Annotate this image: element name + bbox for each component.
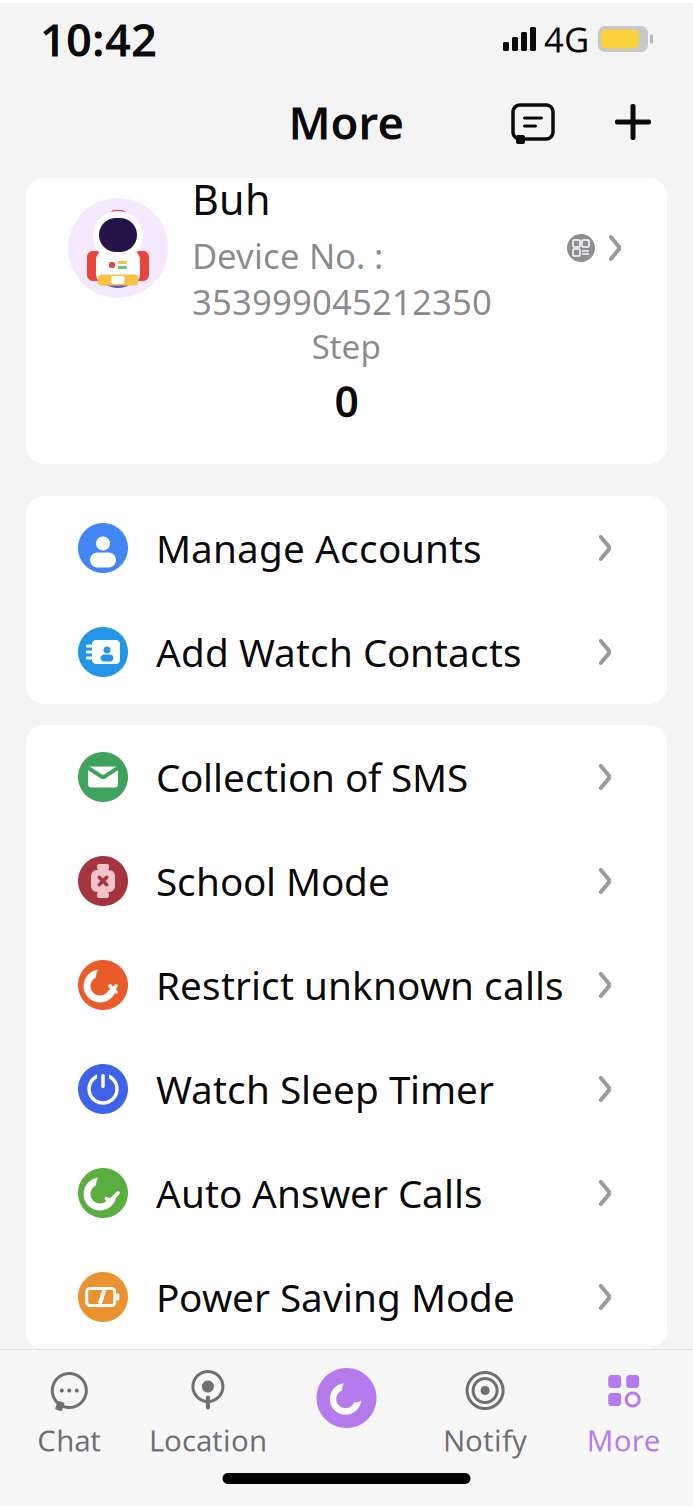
button[interactable]: More <box>554 1365 693 1465</box>
staticText: Add Watch Contacts <box>156 626 522 678</box>
button[interactable]: Notify <box>416 1365 554 1465</box>
staticText: More <box>288 92 404 152</box>
staticText: Step <box>311 324 381 368</box>
staticText: Power Saving Mode <box>156 1271 515 1323</box>
staticText: Watch Sleep Timer <box>156 1063 494 1115</box>
staticText: Auto Answer Calls <box>156 1167 483 1219</box>
staticText: More <box>587 1420 661 1459</box>
button[interactable]: School Mode <box>26 829 667 933</box>
button[interactable]: Buh <box>26 178 667 318</box>
button[interactable]: Messages <box>501 90 565 154</box>
staticText: Manage Accounts <box>156 522 482 574</box>
button[interactable]: Collection of SMS <box>26 725 667 829</box>
button[interactable]: Chat <box>0 1365 139 1465</box>
staticText: Device No. :353999045212350 <box>192 232 492 324</box>
staticText: Chat <box>37 1420 101 1459</box>
button[interactable]: Manage Accounts <box>26 496 667 600</box>
button[interactable]: Power Saving Mode <box>26 1245 667 1349</box>
button[interactable]: Call <box>277 1362 416 1468</box>
button[interactable]: Location <box>139 1365 277 1465</box>
staticText: Restrict unknown calls <box>156 959 564 1011</box>
staticText: Collection of SMS <box>156 751 468 803</box>
button[interactable]: Add Watch Contacts <box>26 600 667 704</box>
staticText: Buh <box>192 171 271 226</box>
button[interactable]: Auto Answer Calls <box>26 1141 667 1245</box>
staticText: Location <box>149 1420 267 1459</box>
staticText: School Mode <box>156 855 390 907</box>
staticText: 4G <box>544 16 589 62</box>
staticText: 0 <box>334 372 358 429</box>
staticText: Notify <box>443 1420 527 1459</box>
button[interactable]: Watch Sleep Timer <box>26 1037 667 1141</box>
button[interactable]: Restrict unknown calls <box>26 933 667 1037</box>
button[interactable]: Add <box>601 90 665 154</box>
staticText: 10:42 <box>40 9 157 69</box>
